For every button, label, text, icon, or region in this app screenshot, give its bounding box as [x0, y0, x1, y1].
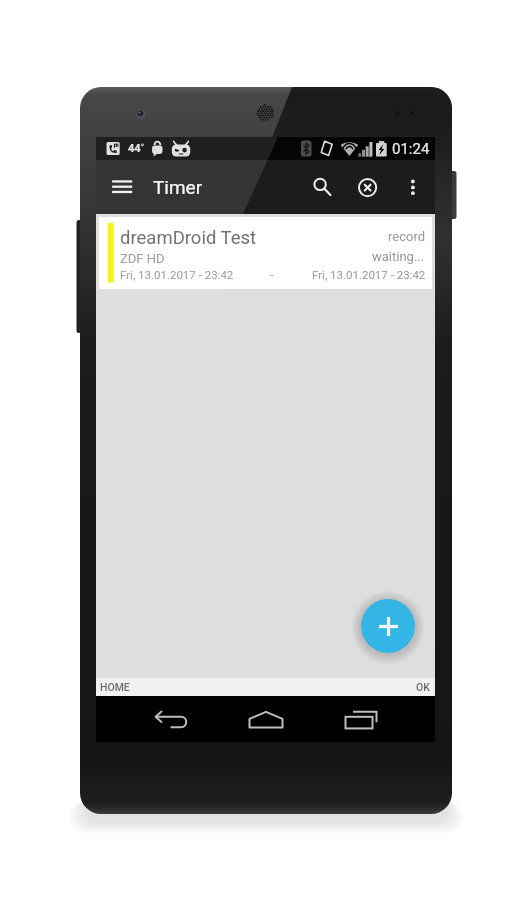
button[interactable]: More options — [392, 163, 434, 211]
staticText: dreamDroid Test — [120, 227, 257, 249]
staticText: Timer — [153, 176, 203, 198]
staticText: Fri, 13.01.2017 - 23:42 — [312, 268, 426, 281]
staticText: - — [270, 268, 274, 281]
staticText: waiting... — [372, 249, 425, 264]
button[interactable]: Recent apps — [313, 696, 408, 742]
staticText: HOME — [100, 681, 130, 693]
staticText: record — [388, 229, 426, 244]
button[interactable]: Home — [218, 696, 313, 742]
button[interactable]: Clear — [344, 163, 390, 211]
staticText: Fri, 13.01.2017 - 23:42 — [120, 268, 234, 281]
staticText: ZDF HD — [120, 251, 165, 266]
button[interactable]: dreamDroid Test — [99, 217, 432, 289]
button[interactable]: HOME — [96, 678, 435, 696]
staticText: 44 — [128, 142, 141, 155]
button[interactable]: Add timer — [361, 599, 415, 653]
button[interactable]: Search — [296, 163, 342, 211]
staticText: OK — [416, 681, 430, 693]
button[interactable]: Open navigation drawer — [98, 163, 142, 211]
button[interactable]: Back — [123, 696, 218, 742]
staticText: 01:24 — [392, 140, 430, 158]
